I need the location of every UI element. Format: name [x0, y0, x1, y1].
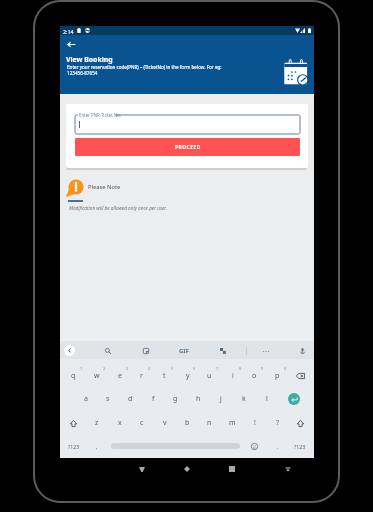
button[interactable]: n	[198, 411, 221, 435]
button[interactable]: f	[142, 387, 165, 411]
button[interactable]: i	[221, 364, 244, 388]
staticText: u	[207, 371, 212, 381]
button[interactable]: More options	[259, 342, 273, 360]
button[interactable]: a	[74, 387, 97, 411]
staticText: p	[275, 371, 280, 381]
button[interactable]: ,	[85, 435, 108, 458]
staticText: x	[118, 418, 122, 428]
button[interactable]: Hide keyboard	[280, 461, 296, 477]
button[interactable]: e	[108, 364, 131, 388]
staticText: w	[94, 371, 100, 381]
button[interactable]: t	[153, 364, 176, 388]
staticText: b	[185, 418, 190, 428]
button[interactable]: ?	[266, 411, 289, 435]
staticText: g	[173, 394, 178, 404]
button[interactable]: b	[176, 411, 199, 435]
button[interactable]: ?123	[56, 435, 92, 458]
button[interactable]: z	[85, 411, 108, 435]
button[interactable]: r	[130, 364, 153, 388]
staticText: s	[106, 394, 110, 404]
button[interactable]: Stickers	[138, 342, 154, 360]
staticText: Please Note	[88, 183, 121, 191]
button[interactable]: Voice input	[294, 342, 310, 360]
staticText: d	[128, 394, 133, 404]
staticText: a	[84, 394, 88, 404]
button[interactable]: y	[176, 364, 199, 388]
staticText: i	[232, 371, 234, 381]
staticText: z	[95, 418, 99, 428]
staticText: k	[242, 394, 246, 404]
button[interactable]: !	[243, 411, 266, 435]
staticText: 2:14	[63, 28, 74, 35]
button[interactable]: c	[130, 411, 153, 435]
button[interactable]: x	[108, 411, 131, 435]
staticText: GIF	[179, 347, 189, 355]
button[interactable]: Recents	[224, 461, 240, 477]
button[interactable]: Backspace	[289, 364, 312, 388]
button[interactable]: q	[62, 364, 85, 388]
staticText: 6	[193, 366, 196, 371]
staticText: o	[252, 371, 257, 381]
staticText: ?	[276, 418, 280, 428]
staticText: ?123	[294, 443, 306, 450]
staticText: y	[186, 371, 190, 381]
staticText: 9	[261, 366, 264, 371]
button[interactable]: l	[255, 387, 278, 411]
button[interactable]: Home	[179, 461, 195, 477]
staticText: 123456-87654	[67, 70, 98, 76]
button[interactable]: p	[266, 364, 289, 388]
staticText: 7	[216, 366, 219, 371]
button[interactable]: GIF	[175, 342, 193, 360]
button[interactable]: Emoji	[243, 435, 266, 458]
staticText: Enter your reservation code(PNR) – (Tick…	[67, 64, 222, 70]
button[interactable]: v	[153, 411, 176, 435]
button[interactable]: w	[85, 364, 108, 388]
staticText: .	[277, 443, 279, 450]
button[interactable]: PROCEED	[75, 138, 300, 156]
staticText: ,	[96, 443, 98, 450]
staticText: v	[163, 418, 167, 428]
button[interactable]: Shift	[62, 411, 85, 435]
staticText: c	[140, 418, 144, 428]
staticText: j	[220, 394, 222, 404]
button[interactable]: Search	[100, 342, 116, 360]
button[interactable]: h	[187, 387, 210, 411]
staticText: 3	[126, 366, 129, 371]
button[interactable]: Close toolbar	[64, 345, 75, 356]
button[interactable]: k	[232, 387, 255, 411]
staticText: 4	[148, 366, 151, 371]
staticText: f	[152, 394, 155, 404]
button[interactable]: g	[164, 387, 187, 411]
button[interactable]: d	[119, 387, 142, 411]
button[interactable]: m	[221, 411, 244, 435]
button[interactable]: j	[209, 387, 232, 411]
staticText: !	[254, 418, 256, 428]
button[interactable]: Shift	[289, 411, 312, 435]
button[interactable]: o	[243, 364, 266, 388]
button[interactable]: ?123	[282, 435, 318, 458]
staticText: ?123	[68, 443, 80, 450]
staticText: 5	[171, 366, 174, 371]
staticText: q	[71, 371, 76, 381]
button[interactable]	[75, 115, 300, 134]
staticText: 0	[284, 366, 287, 371]
staticText: n	[207, 418, 212, 428]
staticText: 2	[103, 366, 106, 371]
staticText: t	[163, 371, 166, 381]
staticText: Modification will be allowed only once p…	[69, 205, 167, 211]
staticText: 1	[80, 366, 83, 371]
staticText: View Booking	[66, 55, 113, 64]
button[interactable]: Enter	[277, 387, 311, 411]
button[interactable]: Back	[134, 461, 150, 477]
button[interactable]: Back	[62, 35, 80, 53]
button[interactable]: u	[198, 364, 221, 388]
staticText: PROCEED	[175, 144, 201, 151]
staticText: e	[118, 371, 122, 381]
staticText: r	[140, 371, 143, 381]
staticText: m	[229, 418, 236, 428]
button[interactable]: s	[96, 387, 119, 411]
button[interactable]: Translate	[215, 342, 231, 360]
staticText: h	[196, 394, 201, 404]
